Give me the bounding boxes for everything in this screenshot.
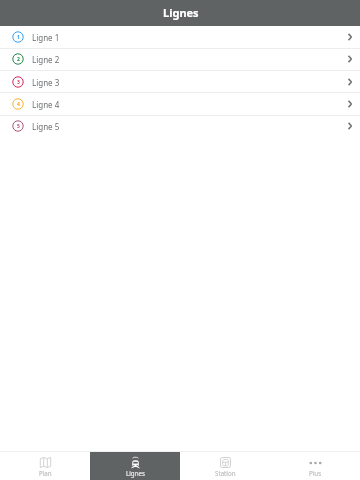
- staticText: Ligne 4: [32, 99, 60, 110]
- button[interactable]: 5: [0, 115, 360, 136]
- staticText: Ligne 1: [32, 32, 60, 43]
- staticText: Plus: [309, 469, 322, 477]
- button[interactable]: Plan: [0, 452, 90, 480]
- other: Plan: [40, 457, 51, 468]
- staticText: 3: [17, 79, 20, 86]
- other: Plus: [310, 457, 321, 468]
- button[interactable]: 1: [0, 26, 360, 47]
- staticText: Ligne 3: [32, 77, 60, 88]
- staticText: 1: [17, 34, 20, 41]
- staticText: Ligne 5: [32, 121, 60, 132]
- staticText: 5: [17, 123, 20, 130]
- other: Station: [220, 457, 231, 468]
- staticText: Ligne 2: [32, 54, 60, 65]
- button[interactable]: 4: [0, 93, 360, 114]
- button[interactable]: Lignes: [90, 452, 180, 480]
- staticText: 2: [17, 56, 20, 63]
- staticText: 4: [17, 101, 20, 108]
- other: Lignes: [130, 457, 141, 468]
- button[interactable]: Plus: [270, 452, 360, 480]
- button[interactable]: Station: [180, 452, 270, 480]
- staticText: Plan: [39, 469, 52, 477]
- staticText: Lignes: [163, 5, 199, 20]
- button[interactable]: 2: [0, 48, 360, 69]
- button[interactable]: 3: [0, 71, 360, 92]
- staticText: Station: [215, 469, 236, 477]
- staticText: Lignes: [126, 469, 145, 477]
